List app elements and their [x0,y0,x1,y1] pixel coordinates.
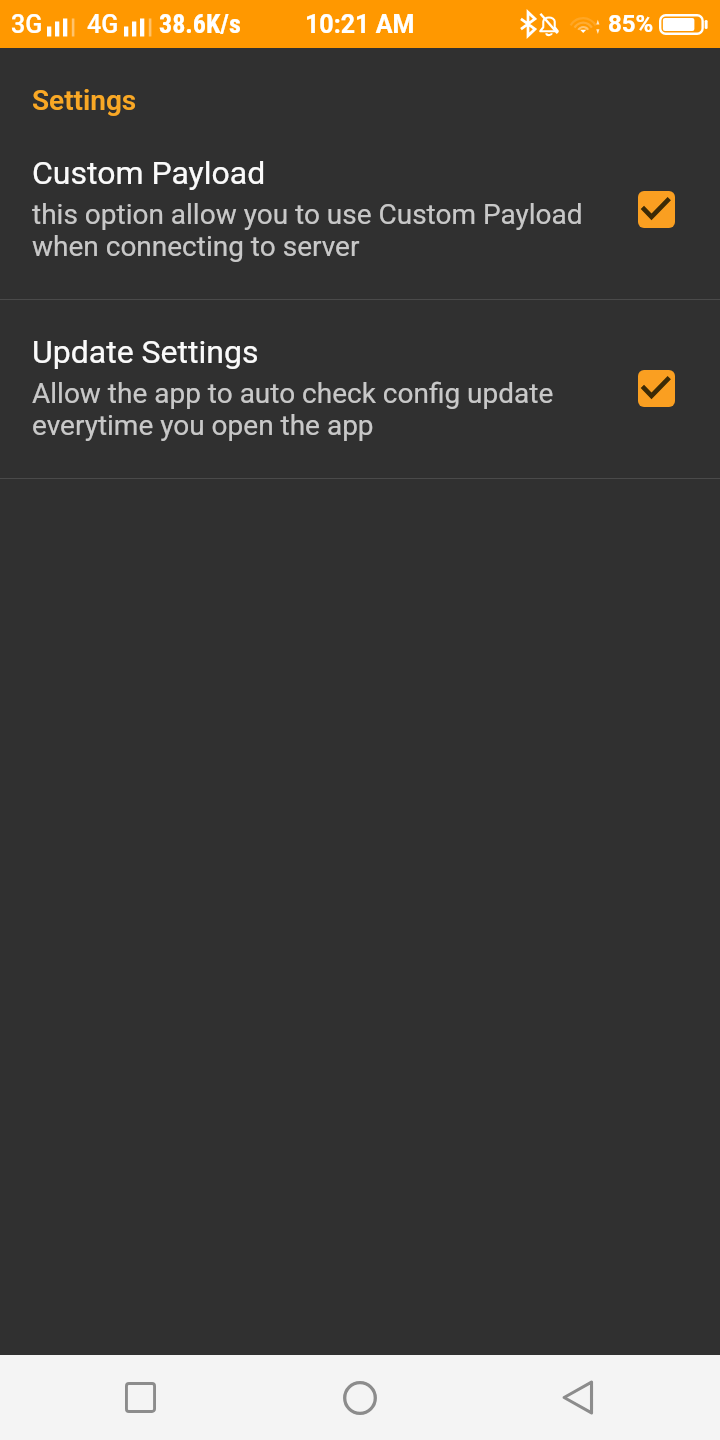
button[interactable]: Home [250,1355,470,1440]
button[interactable]: Back [470,1355,720,1440]
button[interactable]: Recent apps [0,1355,250,1440]
staticText: Custom Payload [32,154,266,192]
staticText: Update Settings [32,333,259,371]
staticText: 3G [11,10,43,39]
button[interactable]: Toggle setting [638,370,675,407]
staticText: 4G [87,10,119,39]
staticText: 38.6K/s [159,9,241,39]
staticText: Settings [32,84,137,117]
staticText: Allow the app to auto check config updat… [32,377,554,442]
staticText: 10:21 AM [305,10,415,39]
button[interactable]: Toggle setting [638,191,675,228]
button[interactable]: Update Settings [0,300,720,478]
staticText: this option allow you to use Custom Payl… [32,198,583,263]
staticText: 85% [608,10,654,38]
button[interactable]: Custom Payload [0,121,720,299]
